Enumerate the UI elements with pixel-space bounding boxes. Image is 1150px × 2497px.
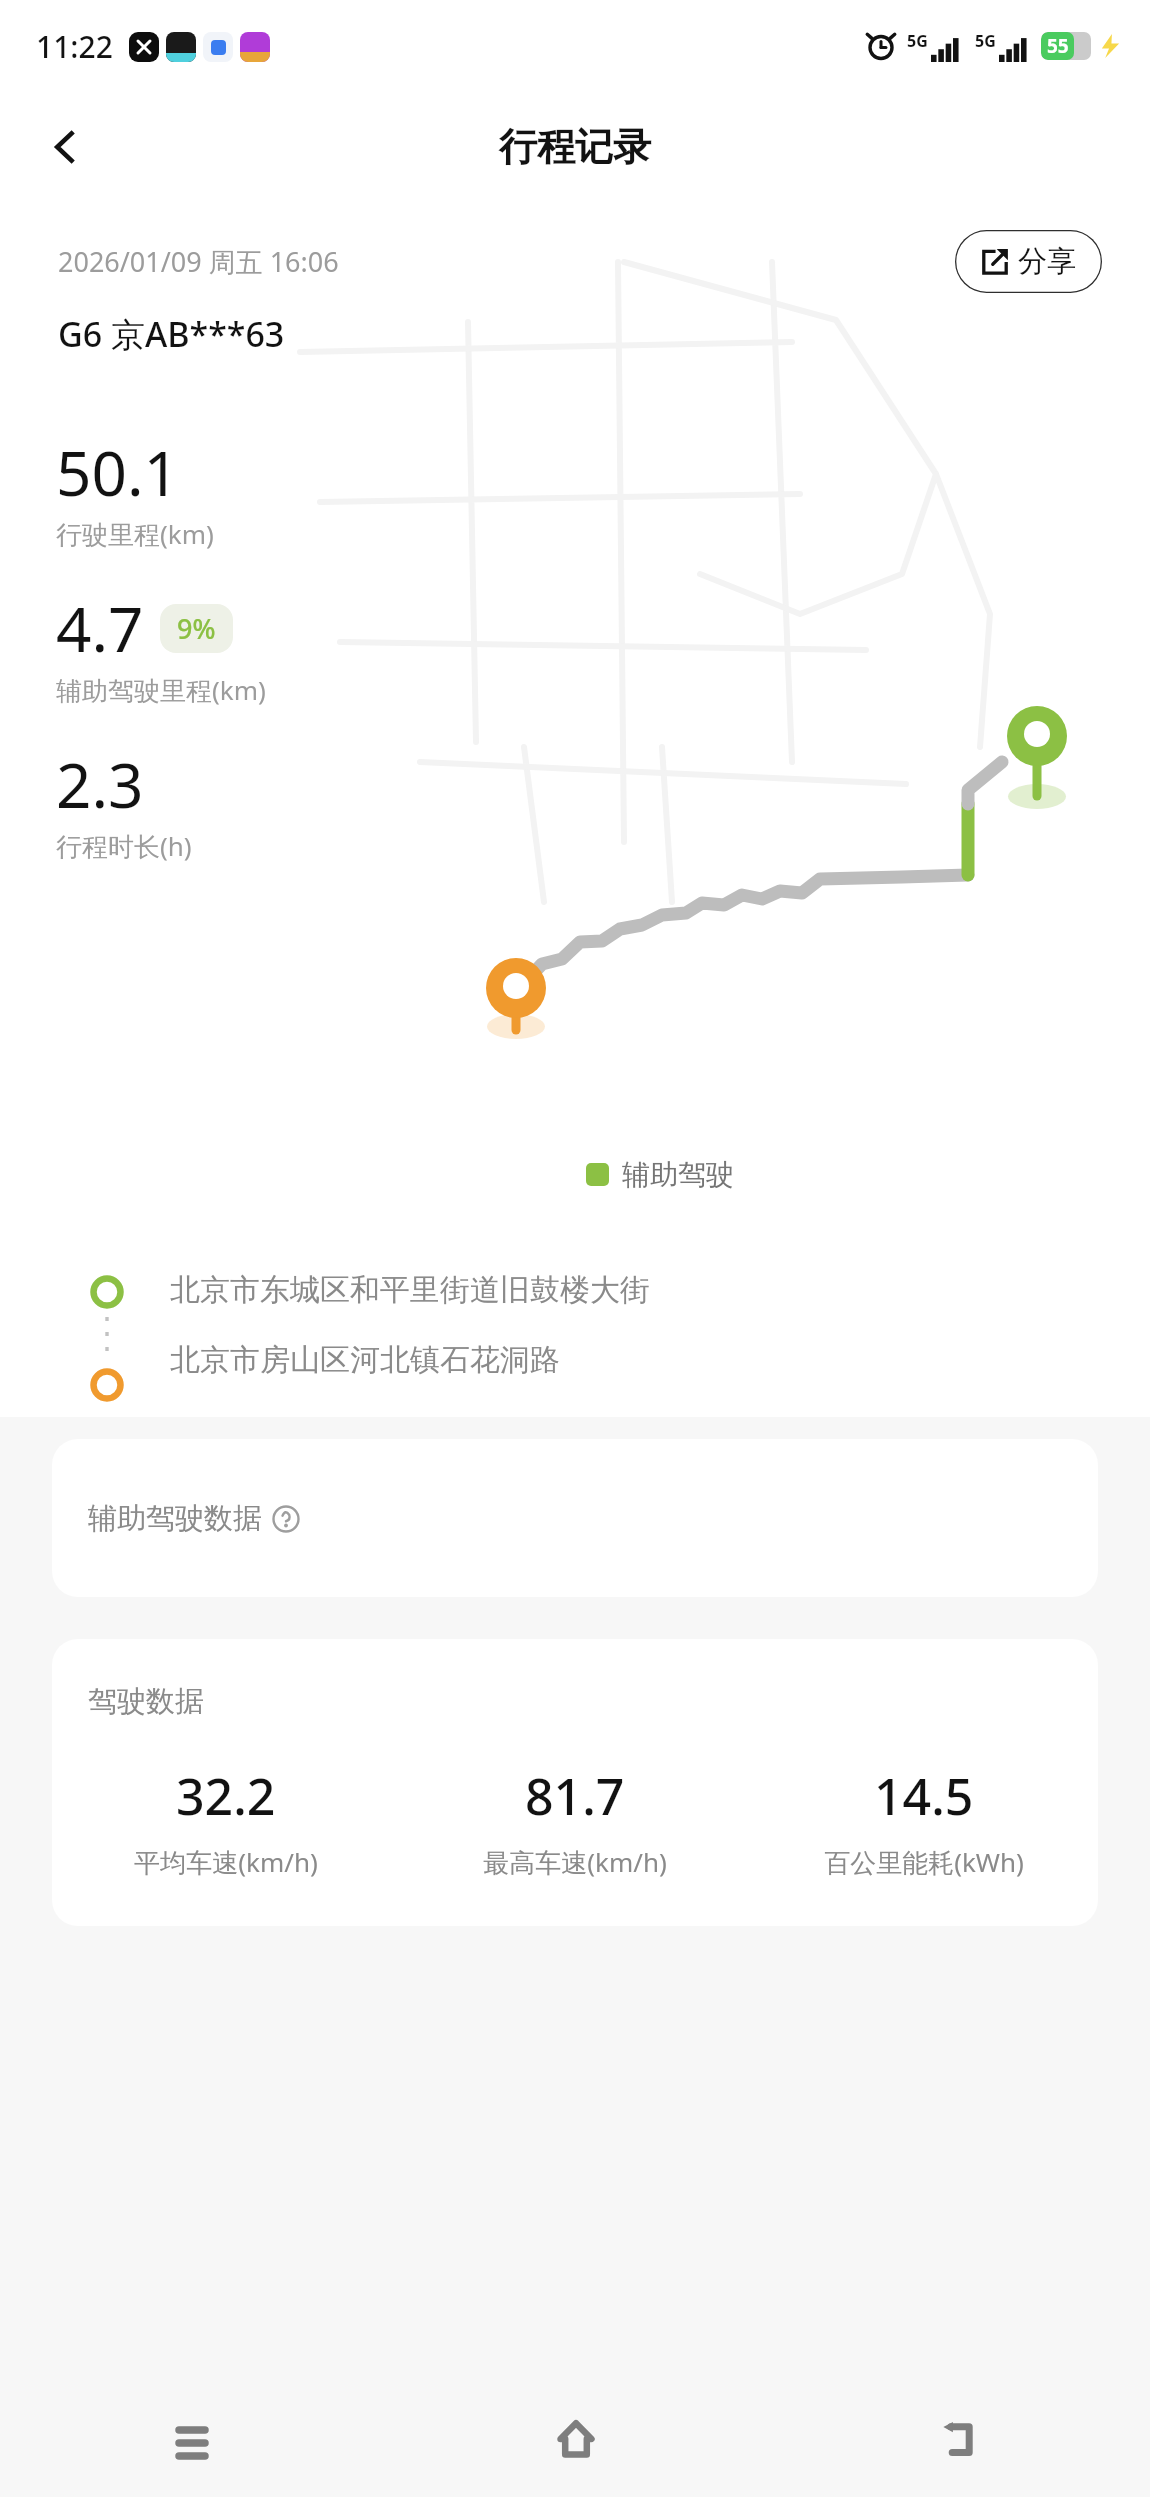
staticText: 行程时长(h) (56, 828, 192, 864)
button[interactable]: 驾驶数据 (52, 1639, 1098, 1926)
staticText: 平均车速(km/h) (134, 1844, 318, 1880)
staticText: 55 (1047, 33, 1069, 59)
staticText: 分享 (1018, 243, 1076, 280)
staticText: 辅助驾驶数据 (88, 1500, 262, 1537)
staticText: 行驶里程(km) (56, 516, 214, 552)
staticText: 辅助驾驶 (622, 1157, 734, 1192)
button[interactable]: 辅助驾驶数据 (52, 1439, 1098, 1597)
staticText: 北京市东城区和平里街道旧鼓楼大街 (170, 1271, 650, 1309)
staticText: 14.5 (874, 1762, 974, 1830)
staticText: 2.3 (56, 742, 144, 826)
staticText: 5G (907, 30, 928, 52)
staticText: 2026/01/09 周五 16:06 (58, 243, 339, 280)
staticText: 行程记录 (499, 123, 651, 171)
staticText: 百公里能耗(kWh) (824, 1844, 1024, 1880)
staticText: 最高车速(km/h) (483, 1844, 667, 1880)
button[interactable]: Back (30, 111, 102, 183)
button[interactable]: Back (767, 2380, 1150, 2497)
staticText: G6 京AB***63 (58, 311, 285, 357)
staticText: 辅助驾驶里程(km) (56, 672, 266, 708)
button[interactable]: 分享 (955, 230, 1102, 293)
staticText: 9% (177, 610, 216, 647)
staticText: 4.7 (56, 586, 144, 670)
staticText: 32.2 (176, 1762, 276, 1830)
staticText: 驾驶数据 (88, 1683, 204, 1720)
button[interactable]: Recent apps (0, 2380, 384, 2497)
staticText: 北京市房山区河北镇石花洞路 (170, 1341, 560, 1379)
staticText: 5G (975, 30, 996, 52)
staticText: 50.1 (56, 430, 180, 514)
button[interactable]: Home (384, 2380, 767, 2497)
staticText: 11:22 (36, 26, 113, 67)
staticText: 81.7 (525, 1762, 625, 1830)
